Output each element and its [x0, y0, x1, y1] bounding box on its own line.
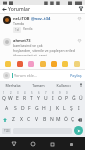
button[interactable]: 1d: [13, 27, 21, 33]
button[interactable]: Filter: [77, 5, 85, 13]
button[interactable]: Yorum ekle...: [12, 73, 70, 78]
staticText: P: [65, 95, 69, 102]
button[interactable]: B: [41, 114, 48, 125]
staticText: E: [16, 95, 19, 102]
staticText: Q: [2, 95, 6, 102]
staticText: S: [14, 105, 17, 112]
button[interactable]: J: [47, 103, 54, 114]
staticText: Ğ: [72, 95, 76, 102]
staticText: Ü: [79, 95, 83, 102]
staticText: 8: [52, 91, 54, 95]
staticText: ?123: [4, 129, 10, 133]
button[interactable]: Home: [28, 139, 38, 149]
staticText: Tamda: [13, 21, 25, 26]
button[interactable]: A: [3, 103, 11, 114]
staticText: Merhaba: [5, 83, 21, 88]
button[interactable]: L: [61, 103, 68, 114]
staticText: T: [30, 95, 33, 102]
button[interactable]: I: [75, 103, 82, 114]
staticText: W: [8, 95, 13, 102]
button[interactable]: Merhaba: [0, 81, 26, 89]
button[interactable]: 6: [35, 90, 42, 103]
staticText: Yanıtla: [23, 27, 33, 31]
button[interactable]: 1: [1, 90, 7, 103]
staticText: C: [27, 116, 31, 123]
button[interactable]: ?123: [2, 128, 11, 134]
button[interactable]: V: [33, 114, 41, 125]
staticText: 2: [10, 91, 12, 95]
button[interactable]: 7: [42, 90, 49, 103]
button[interactable]: S: [11, 103, 19, 114]
staticText: hoşlandım, sitenile ve popleşen eriled: [13, 48, 75, 53]
staticText: 6: [38, 91, 40, 95]
staticText: U: [44, 95, 48, 102]
button[interactable]: 8: [49, 90, 56, 103]
button[interactable]: X: [17, 114, 25, 125]
button[interactable]: F: [26, 103, 33, 114]
staticText: Paylaş: [70, 73, 82, 78]
staticText: ahmet73: [13, 38, 31, 43]
button[interactable]: Emoji: [5, 61, 11, 67]
button[interactable]: K: [54, 103, 61, 114]
staticText: Ç: [71, 116, 75, 123]
button[interactable]: Recents: [47, 139, 57, 149]
button[interactable]: Ş: [68, 103, 75, 114]
button[interactable]: Yanıtla: [23, 27, 33, 31]
staticText: 4: [24, 91, 26, 95]
button[interactable]: Tamam: [26, 81, 51, 89]
button[interactable]: 5: [28, 90, 35, 103]
button[interactable]: Keyboard: [66, 139, 76, 149]
staticText: @nov..t34: [31, 16, 51, 21]
staticText: J: [50, 105, 52, 112]
staticText: I: [78, 105, 80, 112]
button[interactable]: Back: [0, 5, 8, 13]
button[interactable]: Back: [9, 139, 19, 149]
staticText: 9: [59, 91, 61, 95]
button[interactable]: H: [40, 103, 47, 114]
button[interactable]: Emoji: [74, 61, 80, 67]
button[interactable]: G: [33, 103, 40, 114]
staticText: Tamam: [32, 83, 45, 88]
button[interactable]: Emoji: [62, 61, 68, 67]
staticText: 5: [31, 91, 33, 95]
staticText: V: [35, 116, 39, 123]
button[interactable]: Backspace: [76, 114, 84, 125]
button[interactable]: C: [25, 114, 33, 125]
staticText: K: [56, 105, 60, 112]
button[interactable]: 0: [63, 90, 70, 103]
button[interactable]: ahmet73: [0, 36, 85, 58]
button[interactable]: Ü: [77, 90, 84, 103]
staticText: X: [20, 116, 23, 123]
staticText: N: [50, 116, 54, 123]
staticText: Ş: [70, 105, 73, 112]
button[interactable]: Emoji: [28, 61, 34, 67]
button[interactable]: 4: [21, 90, 28, 103]
button[interactable]: Send: [74, 126, 83, 135]
button[interactable]: Paylaş: [70, 73, 82, 78]
button[interactable]: Voice input: [76, 81, 85, 89]
button[interactable]: Like: [77, 38, 82, 43]
button[interactable]: Ğ: [70, 90, 77, 103]
button[interactable]: Emoji: [40, 61, 46, 67]
button[interactable]: N: [48, 114, 55, 125]
button[interactable]: Z: [9, 114, 17, 125]
button[interactable]: Emoji: [51, 61, 57, 67]
button[interactable]: Ö: [62, 114, 69, 125]
button[interactable]: Kullanıcı: [51, 81, 76, 89]
button[interactable]: 9: [56, 90, 63, 103]
button[interactable]: Like: [77, 16, 82, 21]
button[interactable]: Shift: [1, 114, 9, 125]
staticText: ökonomünüzü cami: [13, 53, 47, 56]
button[interactable]: 3: [14, 90, 21, 103]
button[interactable]: D: [19, 103, 26, 114]
staticText: Yorumlar: [8, 6, 31, 13]
button[interactable]: M: [55, 114, 62, 125]
button[interactable]: neLiTOB: [0, 14, 85, 35]
staticText: B: [43, 116, 47, 123]
button[interactable]: Emoji: [17, 61, 23, 67]
staticText: 0: [66, 91, 68, 95]
button[interactable]: Ç: [69, 114, 76, 125]
button[interactable]: 2: [7, 90, 14, 103]
staticText: neLiTOB: [13, 16, 30, 21]
